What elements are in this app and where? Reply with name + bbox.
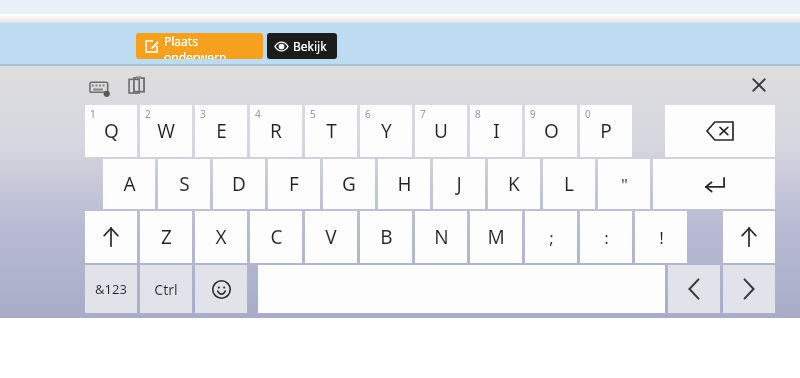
- staticText: 9: [530, 107, 536, 121]
- staticText: I: [493, 118, 500, 144]
- button[interactable]: ;: [525, 211, 577, 263]
- button[interactable]: Shift: [85, 211, 137, 263]
- button[interactable]: F: [268, 159, 320, 209]
- button[interactable]: J: [433, 159, 485, 209]
- button[interactable]: 7: [415, 105, 467, 157]
- button[interactable]: Backspace: [665, 105, 775, 157]
- staticText: K: [508, 171, 520, 197]
- button[interactable]: H: [378, 159, 430, 209]
- staticText: C: [270, 224, 283, 250]
- button[interactable]: D: [213, 159, 265, 209]
- button[interactable]: 5: [305, 105, 357, 157]
- staticText: 3: [200, 107, 206, 121]
- staticText: Q: [104, 118, 119, 144]
- button[interactable]: K: [488, 159, 540, 209]
- button[interactable]: L: [543, 159, 595, 209]
- button[interactable]: ": [598, 159, 650, 209]
- button[interactable]: Enter: [653, 159, 775, 209]
- staticText: P: [600, 118, 612, 144]
- staticText: U: [434, 118, 448, 144]
- staticText: F: [289, 171, 299, 197]
- staticText: Bekijk: [293, 38, 327, 54]
- staticText: ": [621, 173, 628, 196]
- staticText: X: [215, 224, 227, 250]
- button[interactable]: 6: [360, 105, 412, 157]
- staticText: Ctrl: [154, 280, 178, 299]
- button[interactable]: Z: [140, 211, 192, 263]
- staticText: 1: [90, 107, 96, 121]
- button[interactable]: C: [250, 211, 302, 263]
- staticText: 8: [475, 107, 481, 121]
- staticText: S: [179, 171, 190, 197]
- button[interactable]: :: [580, 211, 632, 263]
- button[interactable]: M: [470, 211, 522, 263]
- button[interactable]: B: [360, 211, 412, 263]
- staticText: B: [380, 224, 393, 250]
- staticText: O: [544, 118, 559, 144]
- button[interactable]: N: [415, 211, 467, 263]
- button[interactable]: 3: [195, 105, 247, 157]
- staticText: 2: [145, 107, 151, 121]
- staticText: 4: [255, 107, 261, 121]
- staticText: V: [325, 224, 337, 250]
- staticText: :: [604, 226, 609, 249]
- staticText: L: [564, 171, 574, 197]
- button[interactable]: Left: [668, 265, 720, 313]
- button[interactable]: 1: [85, 105, 137, 157]
- button[interactable]: Bekijk: [267, 33, 337, 59]
- button[interactable]: A: [103, 159, 155, 209]
- button[interactable]: S: [158, 159, 210, 209]
- staticText: H: [397, 171, 412, 197]
- button[interactable]: Shift right: [723, 211, 775, 263]
- button[interactable]: G: [323, 159, 375, 209]
- button[interactable]: Clipboard: [126, 75, 148, 97]
- staticText: ;: [549, 226, 554, 249]
- staticText: 6: [365, 107, 371, 121]
- staticText: Y: [381, 118, 392, 144]
- button[interactable]: Emoji: [195, 265, 247, 313]
- staticText: 7: [420, 107, 426, 121]
- staticText: D: [232, 171, 246, 197]
- button[interactable]: X: [195, 211, 247, 263]
- button[interactable]: !: [635, 211, 687, 263]
- button[interactable]: 4: [250, 105, 302, 157]
- button[interactable]: Right: [723, 265, 775, 313]
- staticText: Plaats onderwerp: [164, 33, 263, 59]
- staticText: M: [487, 224, 505, 250]
- button[interactable]: Plaats onderwerp: [136, 33, 263, 59]
- button[interactable]: 8: [470, 105, 522, 157]
- staticText: 5: [310, 107, 316, 121]
- staticText: N: [434, 224, 449, 250]
- staticText: A: [123, 171, 136, 197]
- button[interactable]: Ctrl: [140, 265, 192, 313]
- button[interactable]: &123: [85, 265, 137, 313]
- button[interactable]: 9: [525, 105, 577, 157]
- button[interactable]: 2: [140, 105, 192, 157]
- staticText: !: [659, 226, 664, 249]
- staticText: E: [216, 118, 227, 144]
- staticText: G: [342, 171, 356, 197]
- staticText: Z: [161, 224, 172, 250]
- staticText: W: [157, 118, 175, 144]
- staticText: &123: [95, 280, 127, 298]
- button[interactable]: Keyboard settings: [88, 76, 112, 100]
- button[interactable]: 0: [580, 105, 632, 157]
- staticText: T: [326, 118, 337, 144]
- button[interactable]: V: [305, 211, 357, 263]
- staticText: 0: [585, 107, 591, 121]
- staticText: R: [270, 118, 282, 144]
- button[interactable]: Close: [747, 73, 771, 97]
- staticText: J: [456, 171, 462, 197]
